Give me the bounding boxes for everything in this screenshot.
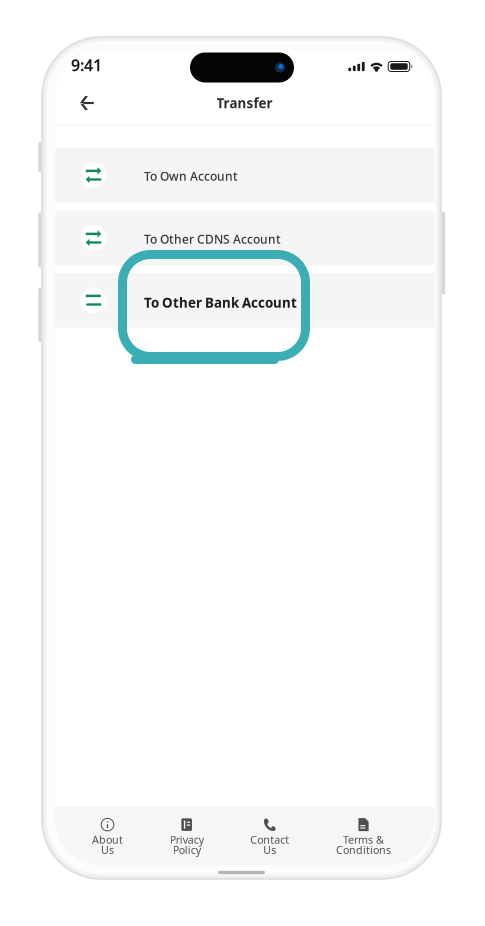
staticText: Contact — [250, 832, 289, 847]
staticText: To Own Account — [144, 168, 238, 184]
staticText: Terms & — [343, 832, 384, 847]
button[interactable]: Terms & — [336, 818, 391, 857]
staticText: To Other Bank Account — [144, 294, 297, 311]
button[interactable]: To Other Bank Account — [55, 273, 434, 327]
button[interactable]: Back — [67, 86, 107, 120]
button[interactable]: To Other CDNS Account — [55, 211, 434, 265]
button[interactable]: Contact — [250, 818, 289, 857]
staticText: Conditions — [336, 843, 391, 857]
staticText: About — [92, 832, 123, 847]
button[interactable]: To Own Account — [55, 148, 434, 202]
button[interactable]: Privacy — [170, 818, 204, 857]
staticText: 9:41 — [71, 54, 102, 76]
staticText: Us — [263, 843, 276, 857]
staticText: Transfer — [216, 94, 272, 112]
staticText: Policy — [173, 843, 201, 857]
button[interactable]: About — [92, 818, 123, 857]
staticText: Us — [101, 843, 114, 857]
staticText: Privacy — [170, 832, 204, 847]
staticText: To Other CDNS Account — [144, 231, 281, 247]
